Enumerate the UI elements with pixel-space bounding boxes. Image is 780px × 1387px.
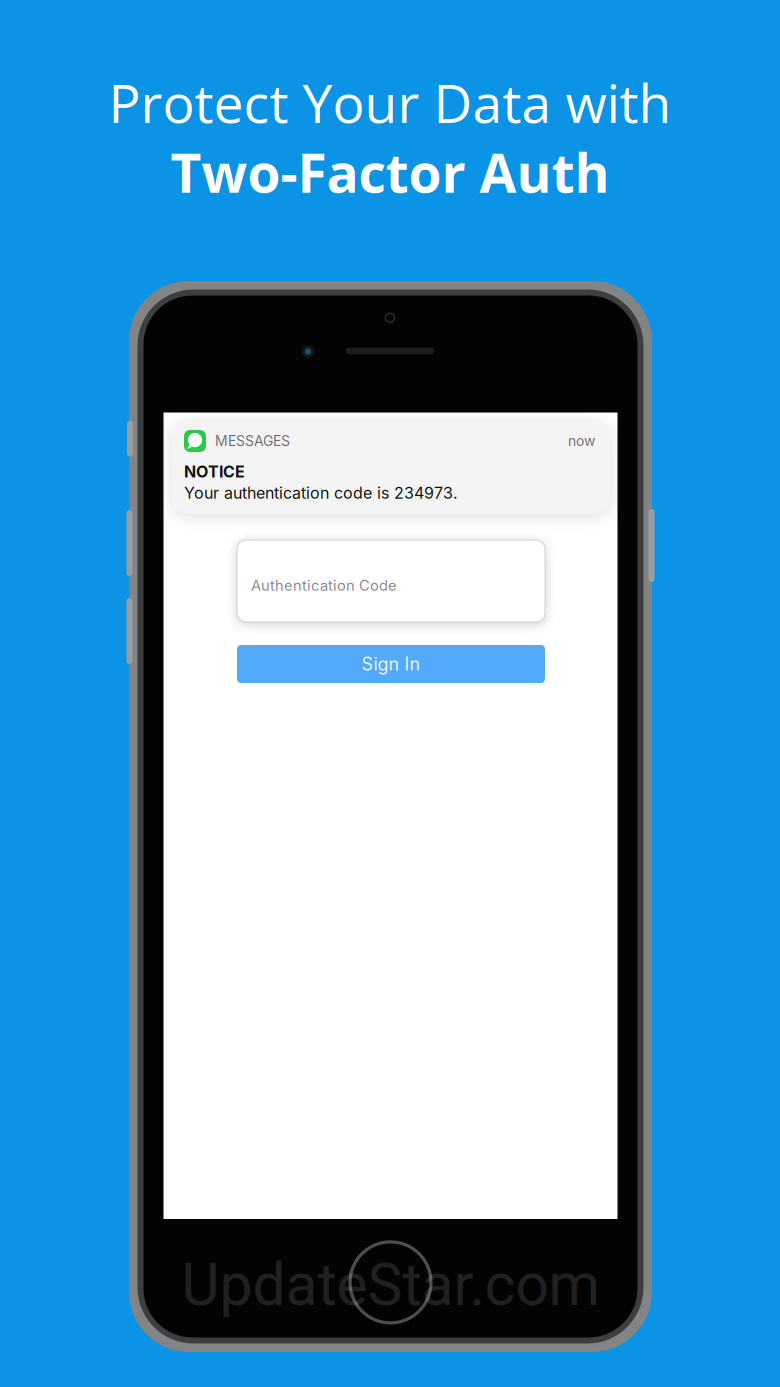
staticText: now: [568, 432, 595, 449]
button[interactable]: MESSAGES: [172, 420, 610, 514]
staticText: Two-Factor Auth: [170, 136, 609, 208]
button[interactable]: Authentication Code: [237, 540, 545, 622]
staticText: UpdateStar.com: [181, 1251, 599, 1319]
staticText: Your authentication code is 234973.: [184, 483, 458, 503]
staticText: Protect Your Data with: [108, 66, 671, 139]
staticText: NOTICE: [184, 462, 245, 481]
staticText: Sign In: [361, 653, 420, 675]
staticText: MESSAGES: [215, 432, 290, 449]
button[interactable]: Sign In: [237, 645, 545, 683]
staticText: Authentication Code: [251, 577, 397, 594]
